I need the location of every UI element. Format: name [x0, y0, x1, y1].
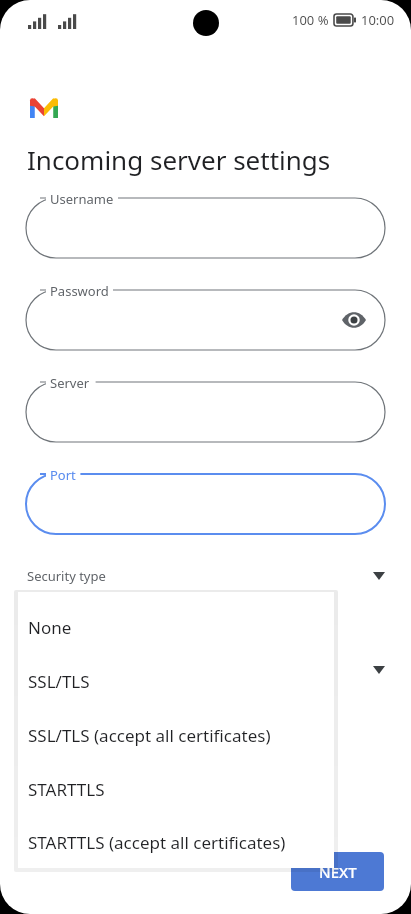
staticText: Server — [50, 374, 90, 392]
staticText: Incoming server settings — [27, 142, 331, 177]
staticText: STARTTLS (accept all certificates) — [28, 831, 286, 854]
button[interactable] — [0, 652, 411, 688]
staticText: SSL/TLS — [28, 670, 90, 693]
button[interactable]: STARTTLS (accept all certificates) — [18, 816, 334, 868]
button[interactable]: STARTTLS — [18, 762, 334, 816]
button[interactable]: SSL/TLS — [18, 654, 334, 708]
button[interactable]: Username — [26, 198, 385, 258]
staticText: Password — [50, 282, 109, 300]
staticText: SSL/TLS (accept all certificates) — [28, 724, 271, 747]
button[interactable]: Port — [26, 474, 385, 534]
staticText: None — [28, 616, 72, 639]
button[interactable]: None — [18, 600, 334, 654]
staticText: Username — [50, 190, 114, 208]
staticText: NEXT — [319, 862, 357, 882]
button[interactable]: Show password — [337, 303, 371, 337]
button[interactable]: NEXT — [291, 852, 384, 891]
staticText: 100 % — [292, 11, 329, 29]
button[interactable]: Server — [26, 382, 385, 442]
staticText: Port — [50, 466, 76, 484]
button[interactable]: SSL/TLS (accept all certificates) — [18, 708, 334, 762]
button[interactable]: Security type — [0, 558, 411, 594]
staticText: STARTTLS — [28, 778, 105, 801]
staticText: 10:00 — [361, 11, 395, 29]
staticText: Security type — [27, 567, 106, 585]
button[interactable]: Password — [26, 290, 385, 350]
